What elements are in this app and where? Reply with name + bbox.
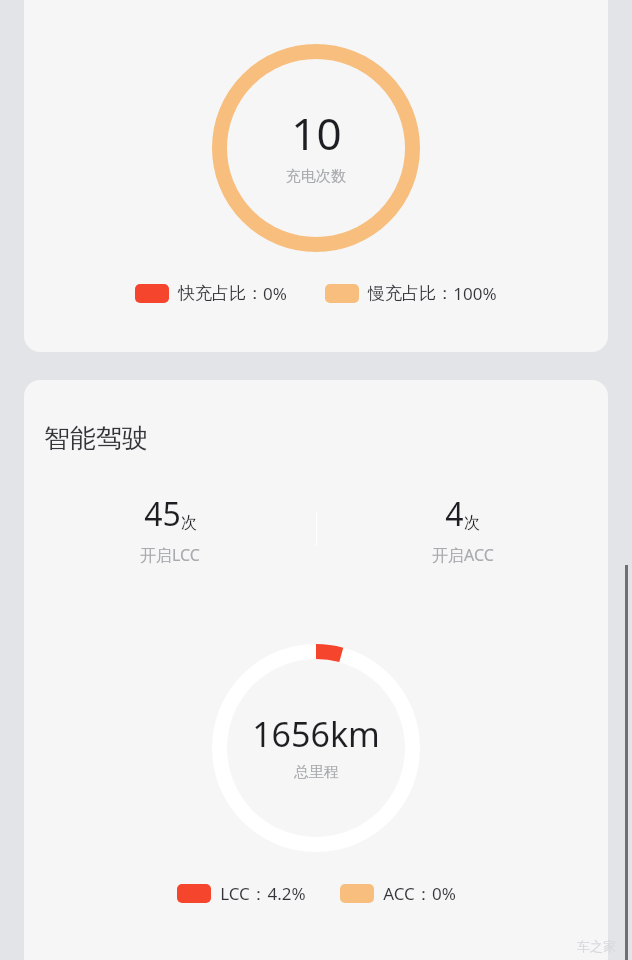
staticText: 0% xyxy=(432,882,456,905)
staticText: 次 xyxy=(464,513,480,533)
staticText: 智能驾驶 xyxy=(44,422,148,455)
button[interactable]: 快充占比： xyxy=(135,282,287,305)
staticText: 45 xyxy=(144,492,181,536)
staticText: LCC： xyxy=(220,882,267,905)
button[interactable]: 45 xyxy=(24,492,316,566)
staticText: 充电次数 xyxy=(286,167,346,186)
button[interactable]: 10 xyxy=(24,0,608,352)
other: LCC： xyxy=(177,884,211,903)
staticText: 1656km xyxy=(252,711,380,757)
staticText: 次 xyxy=(181,513,197,533)
button[interactable]: 慢充占比： xyxy=(325,282,497,305)
button[interactable]: ACC： xyxy=(340,882,456,905)
button[interactable]: 智能驾驶 xyxy=(24,380,608,960)
button[interactable]: LCC： xyxy=(177,882,306,905)
staticText: 10 xyxy=(291,103,342,163)
staticText: 慢充占比： xyxy=(368,283,453,304)
staticText: 开启ACC xyxy=(432,544,494,566)
staticText: 4 xyxy=(445,492,464,536)
staticText: 快充占比： xyxy=(178,283,263,304)
staticText: ACC： xyxy=(383,882,432,905)
other: 慢充占比： xyxy=(325,284,359,303)
other: ACC： xyxy=(340,884,374,903)
staticText: 总里程 xyxy=(294,763,339,782)
staticText: 车之家 xyxy=(577,938,616,954)
other: 快充占比： xyxy=(135,284,169,303)
staticText: 4.2% xyxy=(267,882,306,905)
staticText: 0% xyxy=(263,282,287,305)
staticText: 100% xyxy=(453,282,497,305)
button[interactable]: 4 xyxy=(317,492,608,566)
staticText: 开启LCC xyxy=(140,544,200,566)
